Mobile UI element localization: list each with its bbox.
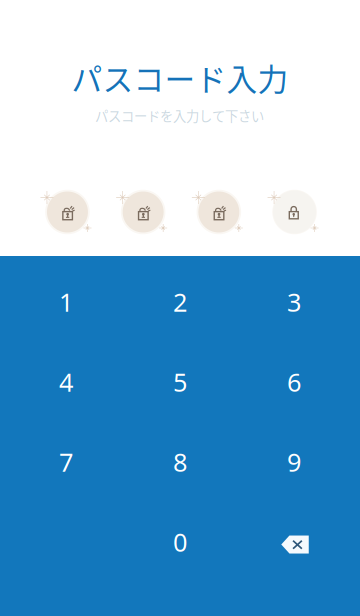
staticText: 6 xyxy=(287,365,301,399)
staticText: パスコードを入力して下さい xyxy=(95,106,264,125)
staticText: 1 xyxy=(59,285,73,319)
button[interactable]: 8 xyxy=(123,422,237,502)
button[interactable]: 6 xyxy=(237,342,351,422)
button[interactable]: 3 xyxy=(237,262,351,342)
button[interactable]: 2 xyxy=(123,262,237,342)
staticText: 3 xyxy=(287,285,301,319)
button[interactable]: 0 xyxy=(123,502,237,582)
button[interactable]: 9 xyxy=(237,422,351,502)
button[interactable]: 7 xyxy=(9,422,123,502)
staticText: 4 xyxy=(59,365,73,399)
staticText: 0 xyxy=(173,525,187,559)
staticText: 8 xyxy=(173,445,187,479)
button[interactable]: Delete xyxy=(237,502,351,582)
button[interactable]: 1 xyxy=(9,262,123,342)
staticText: パスコード入力 xyxy=(71,55,288,100)
staticText: 7 xyxy=(59,445,73,479)
staticText: 9 xyxy=(287,445,301,479)
staticText: 2 xyxy=(173,285,187,319)
button[interactable]: 5 xyxy=(123,342,237,422)
staticText: 5 xyxy=(173,365,187,399)
button[interactable]: 4 xyxy=(9,342,123,422)
